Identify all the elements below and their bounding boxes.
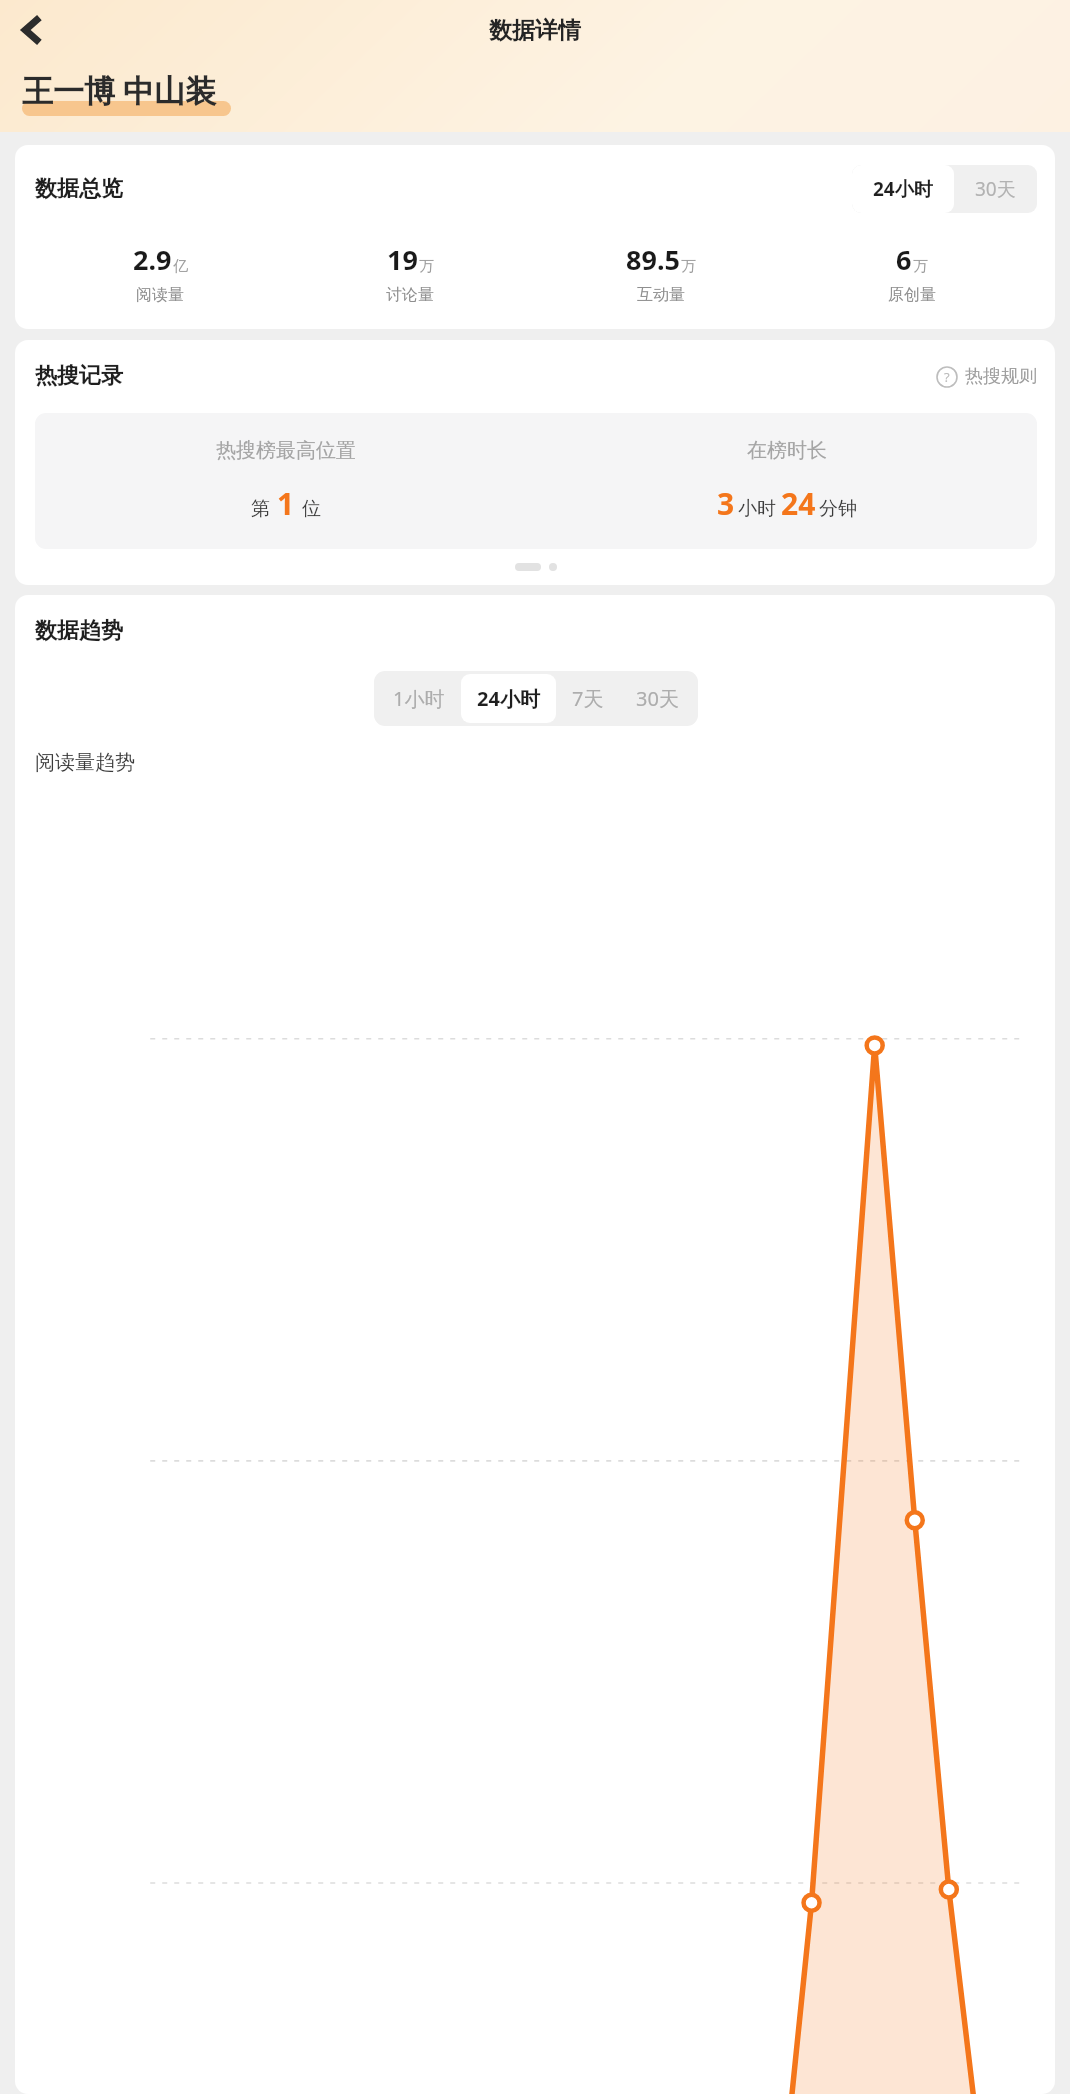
staticText: 万 bbox=[681, 257, 696, 276]
staticText: 3 bbox=[717, 483, 735, 524]
staticText: 原创量 bbox=[888, 285, 936, 305]
staticText: 万 bbox=[913, 257, 928, 276]
staticText: 热搜规则 bbox=[965, 365, 1037, 388]
button[interactable]: 30天 bbox=[620, 674, 695, 723]
staticText: 第 bbox=[251, 497, 270, 521]
staticText: ? bbox=[944, 368, 950, 386]
button[interactable]: Back bbox=[6, 5, 56, 55]
button[interactable]: 7天 bbox=[556, 674, 620, 723]
staticText: 小时 bbox=[738, 497, 776, 521]
staticText: 分钟 bbox=[819, 497, 857, 521]
staticText: 阅读量趋势 bbox=[35, 750, 135, 775]
staticText: 数据详情 bbox=[489, 16, 581, 45]
staticText: 互动量 bbox=[637, 285, 685, 305]
staticText: 万 bbox=[419, 257, 434, 276]
button[interactable]: 24小时 bbox=[461, 674, 556, 723]
staticText: 在榜时长 bbox=[747, 438, 827, 463]
staticText: 1小时 bbox=[393, 685, 445, 712]
button[interactable]: ? bbox=[936, 365, 1037, 388]
button[interactable]: 1小时 bbox=[377, 674, 461, 723]
staticText: 30天 bbox=[975, 176, 1016, 202]
staticText: 位 bbox=[302, 497, 321, 521]
staticText: 89.5 bbox=[626, 241, 680, 278]
button[interactable]: 24小时 bbox=[852, 165, 954, 213]
staticText: 1 bbox=[277, 483, 295, 524]
button[interactable]: 30天 bbox=[954, 165, 1037, 213]
staticText: 6 bbox=[896, 241, 912, 278]
staticText: 热搜榜最高位置 bbox=[216, 438, 356, 463]
staticText: 王一博 中山装 bbox=[22, 69, 217, 111]
staticText: 2.9 bbox=[133, 241, 172, 278]
staticText: 热搜记录 bbox=[35, 362, 123, 390]
staticText: 7天 bbox=[572, 685, 604, 712]
staticText: 24小时 bbox=[873, 176, 933, 202]
staticText: 亿 bbox=[173, 257, 188, 276]
staticText: 24 bbox=[781, 483, 816, 524]
staticText: 24小时 bbox=[477, 685, 540, 712]
staticText: 数据趋势 bbox=[35, 617, 123, 645]
staticText: 19 bbox=[387, 241, 418, 278]
staticText: 讨论量 bbox=[386, 285, 434, 305]
staticText: 数据总览 bbox=[35, 175, 123, 203]
staticText: 30天 bbox=[636, 685, 679, 712]
staticText: 阅读量 bbox=[136, 285, 184, 305]
